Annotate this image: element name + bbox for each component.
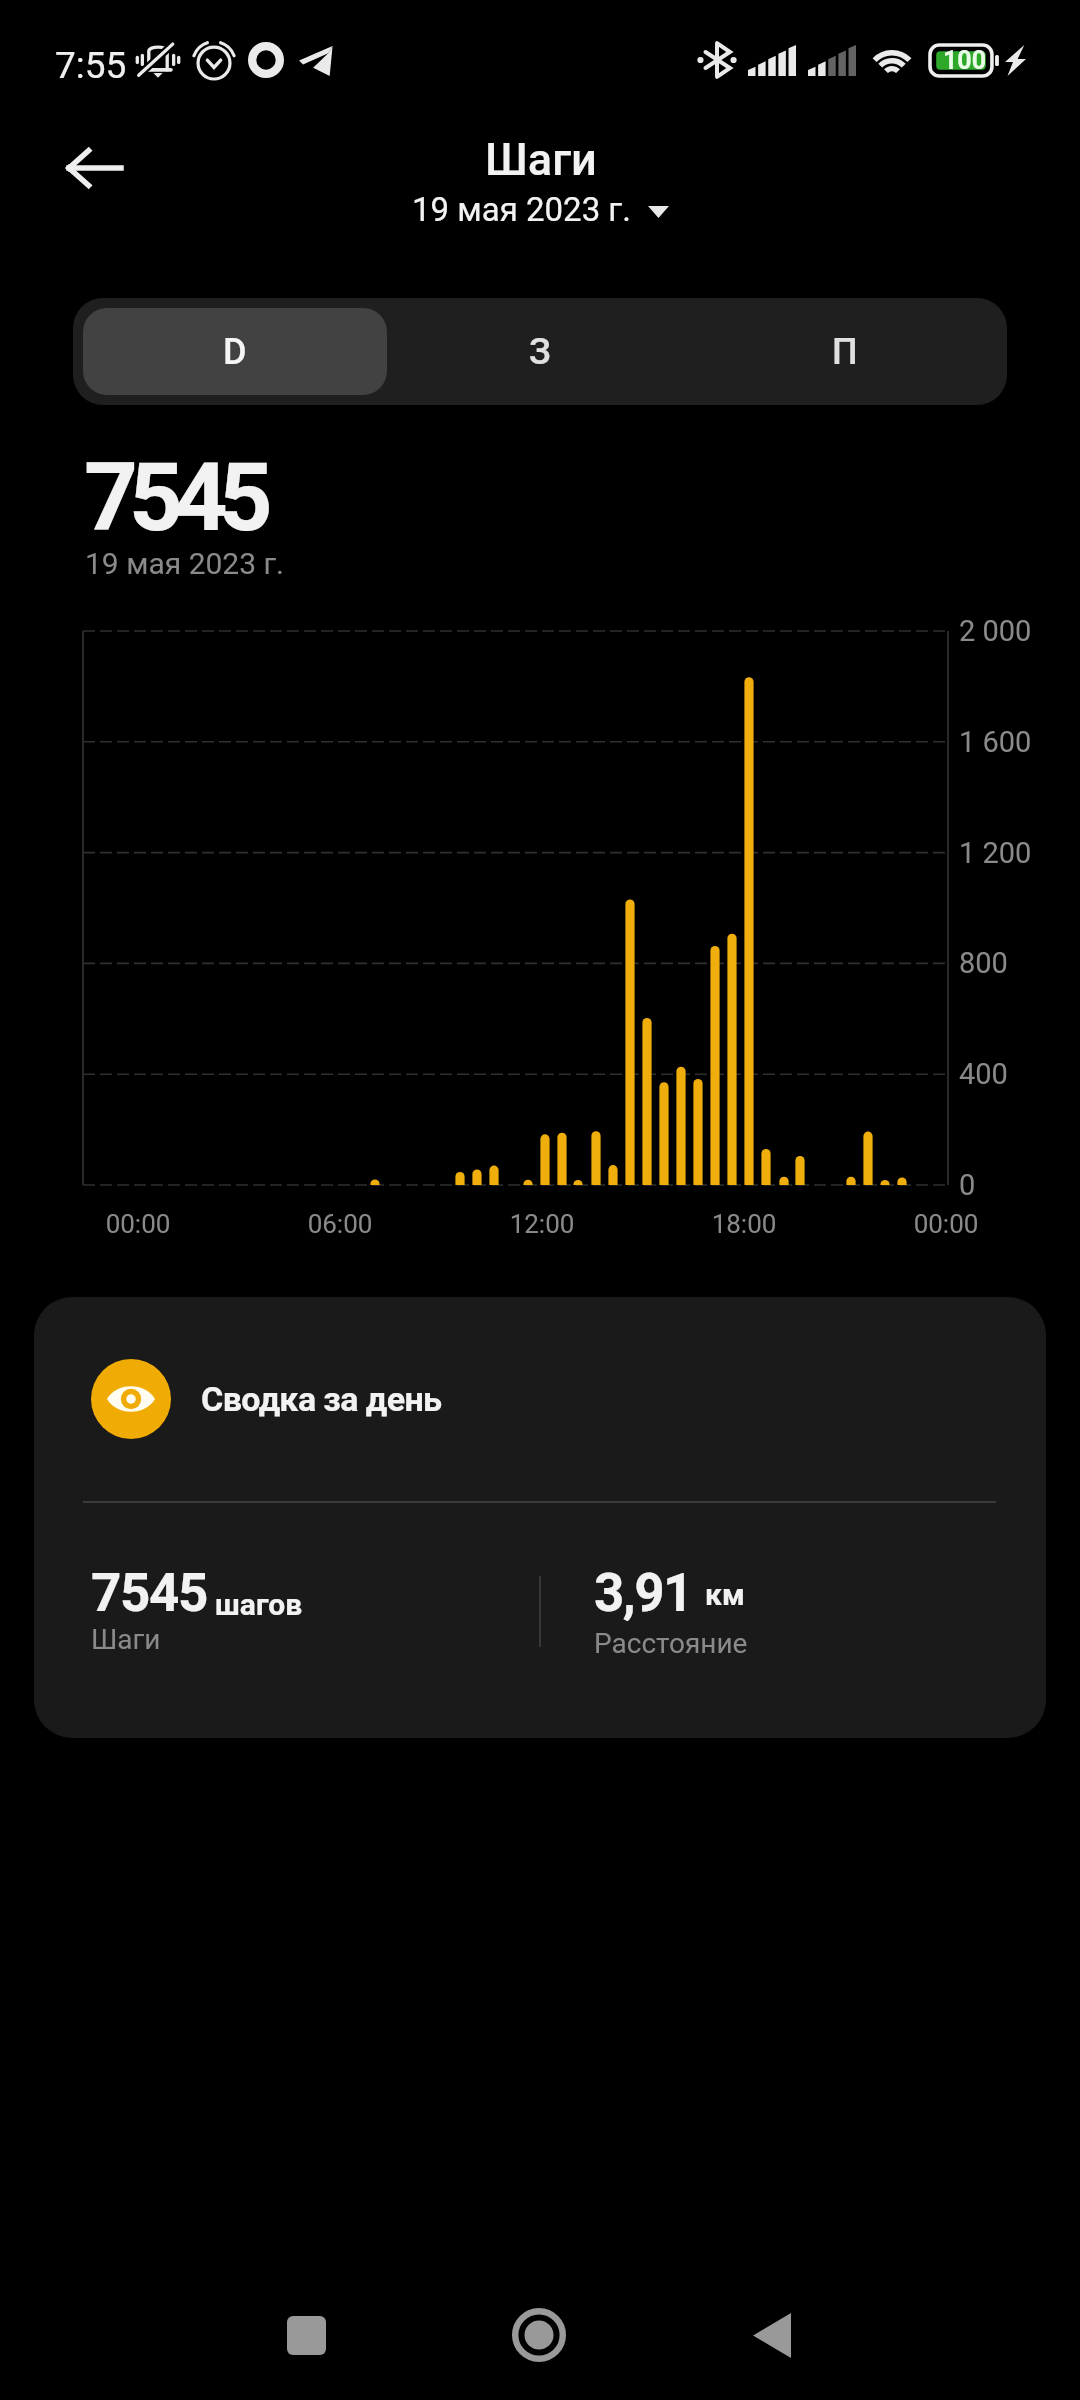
staticText: 19 мая 2023 г. <box>412 190 631 229</box>
button[interactable]: З <box>387 308 692 395</box>
staticText: 7:55 <box>55 44 127 87</box>
staticText: 400 <box>959 1057 1008 1091</box>
button[interactable]: П <box>692 308 997 395</box>
staticText: 19 мая 2023 г. <box>85 546 285 581</box>
staticText: 7545 <box>91 1562 208 1624</box>
staticText: Шаги <box>91 1623 161 1656</box>
staticText: 0 <box>959 1168 976 1202</box>
staticText: 06:00 <box>270 1209 410 1239</box>
staticText: Расстояние <box>594 1627 748 1660</box>
staticText: 00:00 <box>876 1209 1016 1239</box>
staticText: 7545 <box>84 443 264 553</box>
staticText: Шаги <box>485 133 597 186</box>
staticText: 1 600 <box>959 725 1032 759</box>
staticText: 800 <box>959 946 1008 980</box>
staticText: З <box>529 331 551 373</box>
staticText: Сводка за день <box>201 1379 442 1419</box>
staticText: 2 000 <box>959 614 1032 648</box>
button[interactable]: D <box>83 308 387 395</box>
button[interactable]: Сводка за день <box>34 1297 1046 1738</box>
staticText: шагов <box>215 1587 303 1622</box>
staticText: 100 <box>943 46 987 75</box>
staticText: D <box>223 331 247 373</box>
staticText: 18:00 <box>674 1209 814 1239</box>
staticText: 12:00 <box>472 1209 612 1239</box>
button[interactable]: Home <box>469 2283 609 2387</box>
staticText: 1 200 <box>959 836 1032 870</box>
staticText: П <box>832 331 858 373</box>
staticText: 00:00 <box>68 1209 208 1239</box>
staticText: км <box>705 1577 745 1612</box>
button[interactable]: Recent apps <box>236 2283 376 2387</box>
staticText: 3,91 <box>594 1562 692 1624</box>
button[interactable]: Back <box>44 118 144 218</box>
button[interactable]: Back <box>702 2283 842 2387</box>
